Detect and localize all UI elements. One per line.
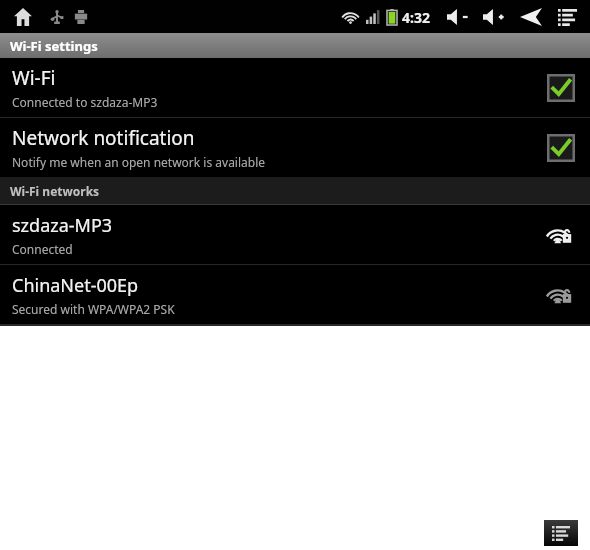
button[interactable]: Menu	[544, 520, 578, 546]
staticText: Network notification	[12, 125, 195, 151]
staticText: ChinaNet-00Ep	[12, 273, 139, 298]
button[interactable]: Toggle Network notification	[546, 133, 576, 163]
staticText: Notify me when an open network is availa…	[12, 154, 266, 170]
button[interactable]: Home	[10, 4, 36, 30]
button[interactable]: Volume down	[444, 2, 474, 32]
button[interactable]: Network notification	[0, 118, 590, 177]
staticText: Connected to szdaza-MP3	[12, 94, 158, 110]
button[interactable]: Wi-Fi	[0, 58, 590, 117]
staticText: Secured with WPA/WPA2 PSK	[12, 301, 175, 317]
staticText: Connected	[12, 241, 73, 257]
staticText: Wi-Fi settings	[10, 37, 98, 55]
staticText: 4:32	[402, 8, 430, 27]
button[interactable]: szdaza-MP3	[0, 205, 590, 264]
button[interactable]: ChinaNet-00Ep	[0, 265, 590, 324]
button[interactable]: Volume up	[480, 2, 510, 32]
staticText: Wi-Fi	[12, 65, 56, 91]
staticText: szdaza-MP3	[12, 213, 113, 238]
button[interactable]: Menu	[552, 2, 582, 32]
button[interactable]: Back	[516, 2, 546, 32]
staticText: Wi-Fi networks	[10, 183, 100, 199]
button[interactable]: Toggle Wi-Fi	[546, 73, 576, 103]
